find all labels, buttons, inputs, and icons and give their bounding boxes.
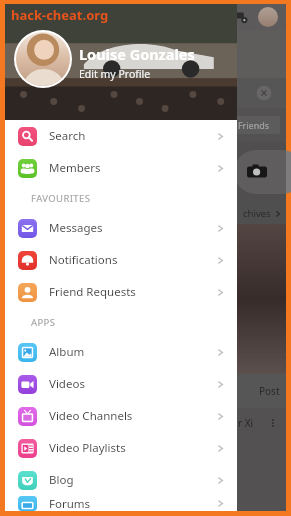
staticText: Forums (49, 496, 216, 511)
button[interactable]: Blog (5, 464, 237, 496)
staticText: Messages (49, 220, 216, 236)
button[interactable]: Search (5, 120, 237, 152)
staticText: APPS (31, 316, 56, 329)
staticText: Album (49, 344, 216, 360)
button[interactable]: Videos (5, 368, 237, 400)
staticText: d Friends (230, 119, 270, 131)
button[interactable]: Louise Gonzales (79, 44, 195, 81)
staticText: FAVOURITES (31, 192, 91, 205)
button[interactable] (16, 32, 70, 86)
staticText: Friend Requests (49, 284, 216, 300)
button[interactable]: Video Playlists (5, 432, 237, 464)
staticText: Video Playlists (49, 440, 216, 456)
staticText: Louise Gonzales (79, 44, 195, 64)
staticText: Notifications (49, 252, 216, 268)
staticText: r Xi (238, 416, 254, 430)
button[interactable]: Forums (5, 496, 237, 511)
staticText: hack-cheat.org (11, 6, 109, 24)
button[interactable]: Notifications (5, 244, 237, 276)
staticText: chives (243, 207, 271, 220)
staticText: Videos (49, 376, 216, 392)
staticText: Blog (49, 472, 216, 488)
staticText: Post (259, 384, 280, 398)
staticText: Members (49, 160, 216, 176)
button[interactable]: Friend Requests (5, 276, 237, 308)
button[interactable]: Members (5, 152, 237, 184)
button[interactable]: Album (5, 336, 237, 368)
staticText: Video Channels (49, 408, 216, 424)
button[interactable]: Messages (5, 212, 237, 244)
button[interactable]: Video Channels (5, 400, 237, 432)
staticText: Edit my Profile (79, 67, 151, 81)
staticText: Search (49, 128, 216, 144)
